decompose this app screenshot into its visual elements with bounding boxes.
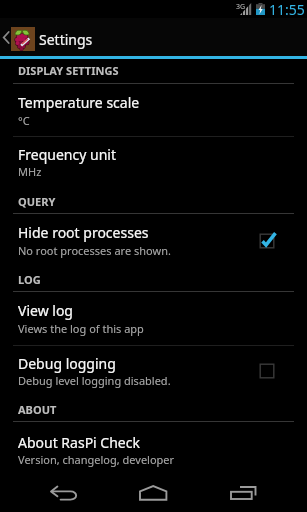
staticText: Views the log of this app — [18, 321, 144, 336]
button[interactable] — [0, 345, 307, 397]
button[interactable]: Navigate up — [0, 18, 11, 56]
staticText: Temperature scale — [18, 93, 140, 112]
staticText: QUERY — [18, 194, 56, 209]
staticText: MHz — [18, 164, 42, 179]
staticText: DISPLAY SETTINGS — [18, 63, 119, 78]
staticText: 11:55 — [269, 0, 305, 18]
button[interactable] — [0, 424, 307, 476]
button[interactable] — [0, 292, 307, 344]
button[interactable]: Recent apps — [205, 470, 295, 512]
button[interactable] — [0, 214, 307, 266]
staticText: Frequency unit — [18, 145, 116, 164]
staticText: Version, changelog, developer — [18, 452, 175, 467]
staticText: LOG — [18, 272, 41, 287]
staticText: 3G — [236, 2, 246, 12]
staticText: No root processes are shown. — [18, 243, 171, 258]
staticText: Settings — [39, 30, 93, 49]
staticText: About RasPi Check — [18, 433, 140, 452]
staticText: °C — [18, 113, 30, 128]
button[interactable] — [0, 84, 307, 136]
staticText: Debug logging — [18, 354, 116, 373]
staticText: ABOUT — [18, 402, 57, 417]
button[interactable]: Home — [108, 470, 198, 512]
button[interactable] — [0, 136, 307, 188]
staticText: Debug level logging disabled. — [18, 373, 171, 388]
button[interactable]: Back — [12, 470, 102, 512]
staticText: View log — [18, 301, 73, 320]
staticText: Hide root processes — [18, 223, 149, 242]
